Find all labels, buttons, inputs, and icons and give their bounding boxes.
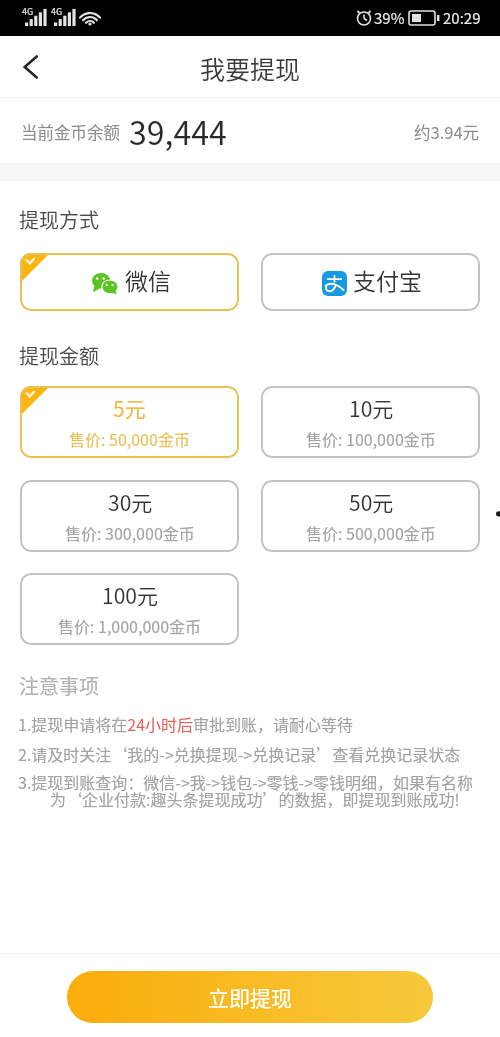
staticText: 3.提现到账查询：微信->我->钱包->零钱->零钱明细，如果有名称 — [18, 770, 488, 793]
staticText: 1.提现申请将在24小时后审批到账，请耐心等待 — [18, 712, 488, 735]
staticText: 39% — [374, 7, 405, 29]
button[interactable]: 立即提现 — [67, 971, 433, 1023]
staticText: 10元 — [349, 393, 394, 423]
staticText: 我要提现 — [200, 50, 301, 86]
staticText: 约3.94元 — [414, 120, 480, 144]
staticText: 售价: 1,000,000金币 — [58, 614, 202, 637]
staticText: 5元 — [113, 393, 146, 423]
staticText: 售价: 300,000金币 — [65, 521, 195, 544]
staticText: 39,444 — [129, 108, 227, 154]
staticText: 提现方式 — [19, 205, 99, 234]
button[interactable]: 100元 — [20, 573, 239, 645]
button[interactable]: 50元 — [261, 480, 480, 552]
staticText: 为‘企业付款:趣头条提现成功’的数据，即提现到账成功! — [18, 787, 488, 810]
staticText: 售价: 100,000金币 — [306, 427, 436, 450]
button[interactable]: 支付宝 — [261, 253, 480, 311]
staticText: 售价: 50,000金币 — [69, 427, 190, 450]
staticText: 100元 — [102, 580, 158, 610]
button[interactable]: 10元 — [261, 386, 480, 458]
staticText: 提现金额 — [19, 341, 99, 370]
staticText: 4G — [22, 5, 34, 18]
button[interactable]: 5元 — [20, 386, 239, 458]
button[interactable]: 微信 — [20, 253, 239, 311]
staticText: 4G — [51, 5, 63, 18]
staticText: 30元 — [108, 487, 153, 517]
staticText: 立即提现 — [208, 982, 292, 1012]
staticText: 2.请及时关注‘我的->兑换提现->兑换记录’查看兑换记录状态 — [18, 742, 488, 765]
staticText: 售价: 500,000金币 — [306, 521, 436, 544]
staticText: 20:29 — [443, 7, 481, 29]
button[interactable]: Back — [0, 39, 56, 95]
button[interactable]: 30元 — [20, 480, 239, 552]
staticText: 支付宝 — [353, 263, 422, 296]
staticText: 50元 — [349, 487, 394, 517]
staticText: 当前金币余额 — [21, 120, 120, 144]
staticText: 微信 — [125, 263, 171, 296]
staticText: 注意事项 — [19, 671, 99, 700]
